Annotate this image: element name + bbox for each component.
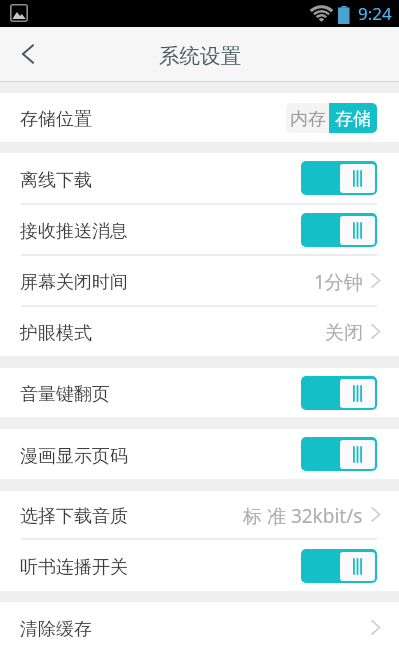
button[interactable]: 护眼模式	[0, 307, 399, 356]
button[interactable]: Toggle	[301, 213, 377, 247]
staticText: 听书连播开关	[20, 556, 128, 579]
button[interactable]: Toggle	[301, 161, 377, 195]
staticText: 标 准 32kbit/s	[243, 503, 363, 529]
staticText: 音量键翻页	[20, 383, 110, 406]
button[interactable]: 内存	[286, 103, 329, 133]
button[interactable]: 屏幕关闭时间	[0, 256, 399, 305]
staticText: 接收推送消息	[20, 220, 128, 243]
button[interactable]: Toggle	[301, 376, 377, 410]
staticText: 系统设置	[159, 43, 241, 69]
button[interactable]: 听书连播开关	[0, 540, 399, 591]
staticText: 护眼模式	[20, 322, 92, 345]
staticText: 清除缓存	[20, 618, 92, 641]
button[interactable]: Back	[0, 27, 54, 81]
button[interactable]: 存储	[329, 103, 377, 133]
button[interactable]: 选择下载音质	[0, 491, 399, 538]
button[interactable]: 清除缓存	[0, 602, 399, 646]
staticText: 关闭	[325, 321, 363, 345]
staticText: 离线下载	[20, 169, 92, 192]
button[interactable]: 离线下载	[0, 153, 399, 203]
button[interactable]: 漫画显示页码	[0, 429, 399, 479]
staticText: 漫画显示页码	[20, 445, 128, 468]
button[interactable]: 存储位置	[0, 93, 399, 142]
staticText: 内存	[290, 108, 326, 131]
staticText: 屏幕关闭时间	[20, 271, 128, 294]
staticText: 选择下载音质	[20, 505, 128, 528]
button[interactable]: Toggle	[301, 549, 377, 583]
staticText: 1分钟	[314, 269, 363, 295]
staticText: 存储	[335, 108, 371, 131]
button[interactable]: Toggle	[301, 437, 377, 471]
button[interactable]: 音量键翻页	[0, 368, 399, 417]
button[interactable]: 接收推送消息	[0, 205, 399, 254]
staticText: 9:24	[358, 2, 392, 25]
staticText: 存储位置	[20, 108, 92, 131]
